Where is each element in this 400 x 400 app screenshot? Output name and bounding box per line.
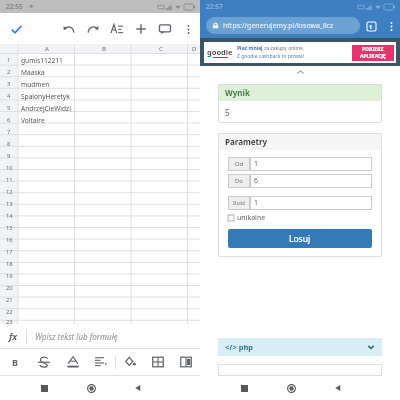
button[interactable]: 1 [250,157,372,171]
staticText: 19 [6,272,13,280]
button[interactable]: Home [80,377,102,399]
staticText: 23 [6,318,13,324]
staticText: 5 [225,107,230,118]
button[interactable]: Tabs [360,15,382,37]
button[interactable]: unikalne [228,213,266,223]
staticText: 16 [6,236,13,244]
staticText: 17 [6,248,13,256]
staticText: A [45,45,49,53]
staticText: 15 [6,224,13,232]
staticText: 1 [254,198,259,208]
staticText: 22 [6,308,13,316]
staticText: fx [9,330,18,342]
button[interactable]: Recents [233,377,255,399]
button[interactable]: Back [327,377,349,399]
staticText: 14 [6,212,13,220]
staticText: Wynik [225,87,250,98]
staticText: C [159,45,163,53]
staticText: mudmen [21,80,50,89]
button[interactable]: Done [6,19,26,39]
button[interactable]: Recents [33,377,55,399]
button[interactable]: Back [127,377,149,399]
button[interactable]: Strikethrough [29,349,58,375]
staticText: 1 [369,23,373,30]
staticText: </> php [225,342,253,352]
staticText: 4 [7,92,11,100]
staticText: 9 [7,152,11,160]
staticText: goodie [207,47,233,57]
staticText: 21 [6,296,13,304]
button[interactable]: Merge cells [172,349,200,375]
staticText: Maaska [21,68,45,77]
staticText: za zakupy online. [264,45,305,52]
staticText: 18 [6,260,13,268]
staticText: 6 [254,176,259,186]
button[interactable]: Home [280,377,302,399]
staticText: 8 [7,140,11,148]
staticText: D [192,45,197,53]
button[interactable]: Undo [57,17,81,41]
staticText: 20 [6,284,13,292]
staticText: 2 [7,68,11,76]
staticText: 13 [6,200,13,208]
staticText: Płać mniej [237,45,264,52]
staticText: https://generujemy.pl/losowa_licz [223,21,334,31]
button[interactable]: More options [382,17,400,35]
staticText: 7 [7,128,11,136]
button[interactable]: Insert [129,17,153,41]
staticText: B [102,45,106,53]
button[interactable]: Comment [153,17,177,41]
staticText: POBIERZ [362,46,384,53]
button[interactable]: 6 [250,174,372,188]
button[interactable]: Text colour [58,349,87,375]
staticText: unikalne [237,213,266,223]
button[interactable]: https://generujemy.pl/losowa_licz [206,17,360,34]
staticText: APLIKACJĘ [360,53,386,60]
staticText: B [12,356,18,368]
button[interactable]: 1 [250,196,372,210]
staticText: 3 [7,80,11,88]
button[interactable]: Format text [105,17,129,41]
staticText: Ilość [233,199,246,207]
staticText: 1 [7,56,11,64]
button[interactable]: Redo [81,17,105,41]
staticText: 12 [6,188,13,196]
staticText: Losuj [289,233,311,245]
staticText: Parametry [225,136,268,147]
staticText: 22:55 [6,2,23,11]
staticText: 1 [254,159,259,169]
staticText: Od [235,160,244,168]
button[interactable]: goodie [204,42,396,63]
staticText: Do [235,177,243,185]
staticText: 11 [6,176,13,184]
button[interactable]: Alignment [87,349,115,375]
staticText: 5 [7,104,11,112]
button[interactable]: Losuj [228,229,372,248]
staticText: 6 [7,116,11,124]
button[interactable]: POBIERZ [352,45,394,61]
staticText: Z goodie cashback to proste! [237,53,305,60]
button[interactable]: fx [0,324,200,348]
staticText: 22:57 [206,2,223,11]
staticText: SpalonyHeretyk [21,92,70,101]
button[interactable]: More options [177,18,199,40]
staticText: Wpisz tekst lub formułę [35,331,118,342]
staticText: gumis112211 [21,56,63,65]
button[interactable]: Bold [0,349,29,375]
button[interactable]: Fill colour [116,349,144,375]
staticText: Voltaire [21,116,45,125]
staticText: 10 [6,164,13,172]
button[interactable]: Borders [144,349,172,375]
button[interactable]: </> php [218,338,382,356]
staticText: AndrzejCieWidzi [21,104,71,113]
